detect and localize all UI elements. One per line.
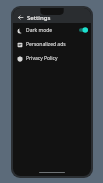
button[interactable]: Personalized ads (13, 37, 91, 51)
button[interactable]: Back (16, 13, 25, 22)
button[interactable]: Dark mode toggle (79, 27, 88, 33)
staticText: Privacy Policy (26, 55, 88, 62)
staticText: Dark mode (26, 27, 79, 34)
button[interactable]: Dark mode (13, 23, 91, 37)
staticText: Personalized ads (26, 41, 88, 48)
staticText: Settings (27, 14, 51, 22)
button[interactable]: Privacy Policy (13, 51, 91, 65)
